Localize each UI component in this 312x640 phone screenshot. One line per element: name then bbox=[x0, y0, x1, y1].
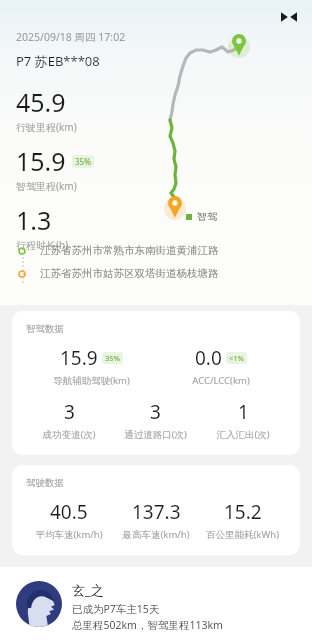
staticText: P7 苏EB***08 bbox=[16, 52, 100, 70]
staticText: 智驾数据 bbox=[26, 323, 64, 335]
staticText: <1% bbox=[229, 353, 244, 363]
staticText: 40.5 bbox=[50, 499, 88, 525]
staticText: 3 bbox=[150, 399, 161, 425]
staticText: 最高车速(km/h) bbox=[122, 528, 190, 541]
staticText: 行程时长(h) bbox=[16, 238, 69, 252]
staticText: 3 bbox=[64, 399, 75, 425]
staticText: 15.2 bbox=[224, 499, 262, 525]
button[interactable]: 驾驶数据 bbox=[12, 465, 300, 555]
button[interactable]: 玄_之 bbox=[0, 567, 312, 640]
staticText: 1 bbox=[238, 399, 249, 425]
staticText: 0.0 bbox=[195, 345, 222, 371]
staticText: 通过道路口(次) bbox=[124, 428, 187, 441]
staticText: ACC/LCC(km) bbox=[192, 374, 250, 387]
staticText: 总里程502km，智驾里程113km bbox=[72, 618, 223, 632]
staticText: 35% bbox=[75, 156, 91, 167]
button[interactable]: Close bbox=[276, 4, 302, 30]
staticText: 已成为P7车主15天 bbox=[72, 602, 160, 616]
staticText: 江苏省苏州市姑苏区双塔街道杨枝塘路 bbox=[40, 267, 219, 280]
staticText: 百公里能耗(kWh) bbox=[206, 528, 279, 541]
staticText: 45.9 bbox=[16, 85, 66, 119]
staticText: 导航辅助驾驶(km) bbox=[53, 374, 130, 387]
staticText: 玄_之 bbox=[72, 581, 104, 599]
staticText: 平均车速(km/h) bbox=[35, 528, 103, 541]
staticText: 成功变道(次) bbox=[42, 428, 96, 441]
staticText: 行驶里程(km) bbox=[16, 120, 77, 134]
staticText: 智驾 bbox=[197, 210, 217, 223]
staticText: 江苏省苏州市常熟市东南街道黄浦江路 bbox=[40, 244, 219, 257]
staticText: 137.3 bbox=[132, 499, 181, 525]
staticText: 驾驶数据 bbox=[26, 477, 64, 489]
staticText: 2025/09/18 周四 17:02 bbox=[16, 30, 126, 44]
staticText: 15.9 bbox=[60, 345, 98, 371]
staticText: 智驾里程(km) bbox=[16, 179, 77, 193]
staticText: 15.9 bbox=[16, 144, 66, 178]
staticText: 汇入汇出(次) bbox=[216, 428, 270, 441]
button[interactable]: 智驾数据 bbox=[12, 311, 300, 455]
staticText: 1.3 bbox=[16, 203, 52, 237]
staticText: 35% bbox=[105, 353, 120, 363]
